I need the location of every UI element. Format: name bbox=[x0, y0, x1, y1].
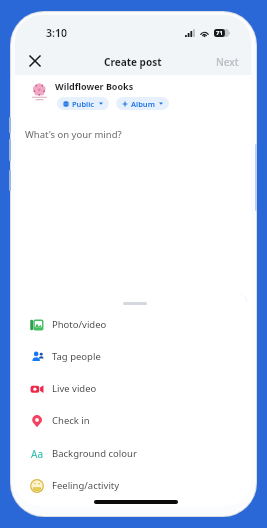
staticText: Live video bbox=[52, 382, 97, 395]
staticText: Aa bbox=[31, 447, 43, 461]
button[interactable]: Album bbox=[116, 97, 169, 110]
staticText: Tag people bbox=[52, 350, 101, 363]
button[interactable]: Next bbox=[211, 51, 244, 73]
staticText: Create post bbox=[104, 55, 162, 69]
staticText: Background colour bbox=[52, 447, 137, 460]
button[interactable]: Aa bbox=[20, 437, 246, 469]
button[interactable]: Feeling/activity bbox=[20, 469, 246, 501]
staticText: 3:10 bbox=[46, 26, 67, 40]
staticText: Feeling/activity bbox=[52, 479, 120, 492]
staticText: Album bbox=[131, 99, 155, 109]
staticText: Public bbox=[72, 99, 95, 109]
button[interactable]: Tag people bbox=[20, 340, 246, 372]
staticText: What's on your mind? bbox=[25, 128, 122, 141]
staticText: Check in bbox=[52, 414, 90, 427]
button[interactable]: Live video bbox=[20, 372, 246, 404]
staticText: Next bbox=[216, 55, 239, 69]
staticText: Wildflower Books bbox=[55, 80, 134, 92]
button[interactable]: Close bbox=[23, 49, 47, 73]
button[interactable]: Public bbox=[57, 97, 109, 110]
staticText: Photo/video bbox=[52, 318, 107, 331]
staticText: 71 bbox=[216, 29, 223, 37]
button[interactable]: Photo/video bbox=[20, 308, 246, 340]
button[interactable]: Check in bbox=[20, 404, 246, 436]
